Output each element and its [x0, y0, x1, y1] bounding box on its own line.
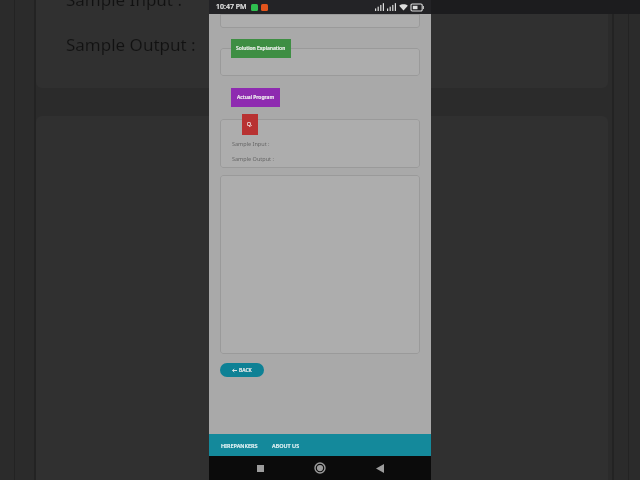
staticText: Sample Output :	[66, 33, 196, 56]
staticText: Solution Explanation	[236, 45, 286, 52]
button[interactable]: BACK	[220, 363, 264, 377]
staticText: 10:47 PM	[216, 2, 247, 12]
button[interactable]: ABOUT US	[271, 438, 301, 453]
button[interactable]: Solution Explanation	[231, 39, 291, 58]
button[interactable]: Actual Program	[231, 88, 280, 107]
staticText: Sample Input :	[66, 0, 182, 11]
staticText: ABOUT US	[272, 442, 300, 449]
staticText: BACK	[239, 367, 252, 374]
staticText: Sample Output :	[232, 155, 274, 162]
staticText: HIREPANKERS	[221, 442, 258, 449]
staticText: Sample Input :	[232, 140, 270, 147]
button[interactable]: Recent apps	[251, 459, 269, 477]
button[interactable]: HIREPANKERS	[220, 438, 259, 453]
button[interactable]: Q.	[242, 114, 258, 135]
staticText: Q.	[247, 121, 253, 128]
button[interactable]: Home	[311, 459, 329, 477]
button[interactable]: Back	[371, 459, 389, 477]
staticText: Actual Program	[237, 94, 275, 101]
